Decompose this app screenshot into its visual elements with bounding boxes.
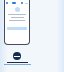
button[interactable]: App logo — [13, 52, 21, 60]
button[interactable] — [7, 27, 27, 30]
